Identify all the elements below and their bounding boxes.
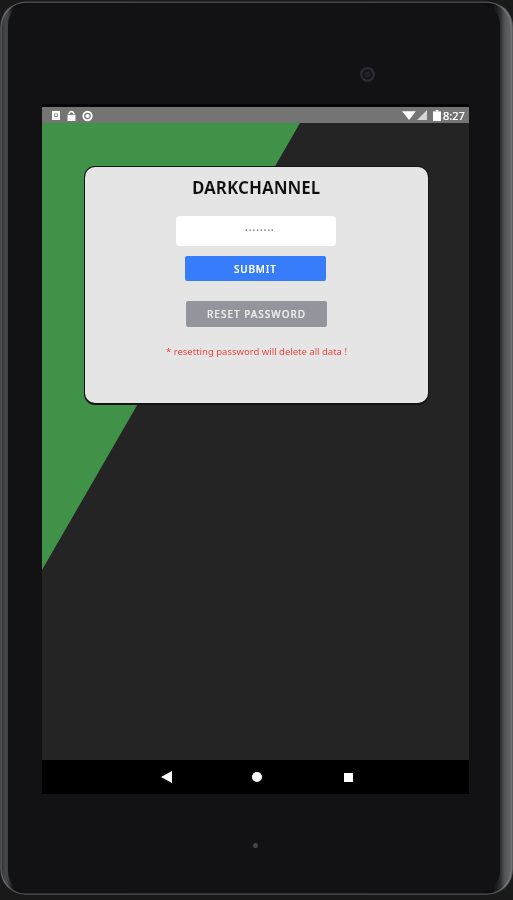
button[interactable]: Back [142, 760, 190, 794]
staticText: DARKCHANNEL [192, 176, 321, 199]
staticText: •••••••• [245, 226, 275, 236]
button[interactable]: SUBMIT [185, 256, 326, 281]
button[interactable]: •••••••• [176, 216, 336, 246]
staticText: * resetting password will delete all dat… [166, 345, 347, 358]
staticText: RESET PASSWORD [207, 307, 307, 321]
button[interactable]: Recent apps [324, 760, 372, 794]
staticText: 8:27 [443, 108, 465, 123]
staticText: SUBMIT [234, 262, 277, 276]
button[interactable]: Home [233, 760, 281, 794]
button[interactable]: RESET PASSWORD [186, 301, 327, 327]
